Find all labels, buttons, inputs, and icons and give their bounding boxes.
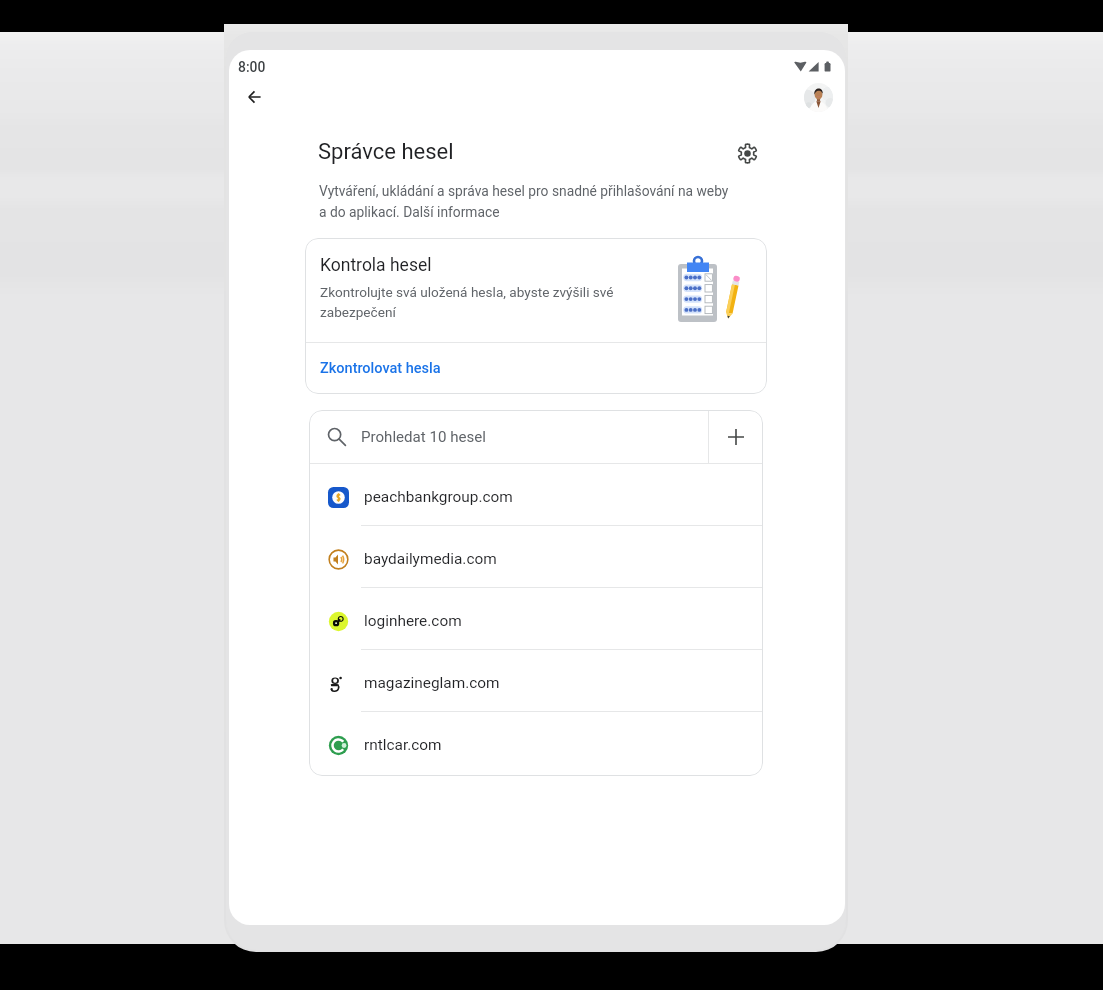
staticText: 8:00 <box>238 59 266 75</box>
staticText: peachbankgroup.com <box>364 488 513 506</box>
button[interactable]: rntlcar.com <box>309 712 763 773</box>
button[interactable]: Settings <box>727 133 767 173</box>
staticText: baydailymedia.com <box>364 550 497 568</box>
staticText: Zkontrolujte svá uložená hesla, abyste z… <box>320 284 640 320</box>
button[interactable]: Account <box>798 77 838 117</box>
staticText: magazineglam.com <box>364 674 500 692</box>
button[interactable]: baydailymedia.com <box>309 526 763 587</box>
staticText: rntlcar.com <box>364 736 442 754</box>
button[interactable]: Back <box>234 77 274 117</box>
staticText: Zkontrolovat hesla <box>320 360 441 377</box>
staticText: Prohledat 10 hesel <box>361 428 486 446</box>
button[interactable]: magazineglam.com <box>309 650 763 711</box>
button[interactable]: Zkontrolovat hesla <box>305 343 767 394</box>
button[interactable]: Add password <box>709 410 763 463</box>
button[interactable]: peachbankgroup.com <box>309 464 763 525</box>
button[interactable]: Prohledat 10 hesel <box>309 410 708 463</box>
staticText: loginhere.com <box>364 612 462 630</box>
staticText: Kontrola hesel <box>320 255 432 276</box>
staticText: Správce hesel <box>318 139 454 165</box>
button[interactable]: loginhere.com <box>309 588 763 649</box>
staticText: Vytváření, ukládání a správa hesel pro s… <box>319 183 735 220</box>
